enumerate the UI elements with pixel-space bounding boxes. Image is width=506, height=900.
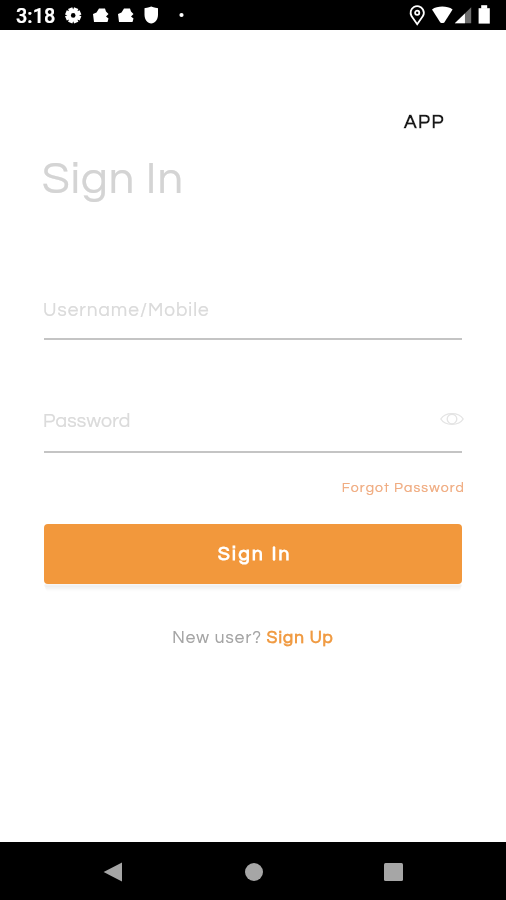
button[interactable]: New user? Sign Up: [44, 629, 462, 647]
staticText: Sign In: [42, 156, 184, 202]
staticText: New user? Sign Up: [44, 629, 462, 647]
staticText: Password: [43, 411, 131, 431]
button[interactable]: APP: [404, 112, 445, 132]
staticText: 3:18: [16, 4, 56, 27]
button[interactable]: Back: [88, 847, 137, 896]
button[interactable]: Home: [229, 847, 278, 896]
button[interactable]: Forgot Password: [44, 481, 465, 495]
staticText: Forgot Password: [44, 481, 465, 495]
staticText: Username/Mobile: [43, 300, 210, 320]
button[interactable]: Password: [44, 405, 424, 453]
button[interactable]: Sign In: [44, 524, 462, 584]
button[interactable]: Username/Mobile: [44, 294, 462, 340]
button[interactable]: Show password: [434, 401, 470, 437]
staticText: APP: [404, 112, 445, 132]
staticText: Sign In: [218, 544, 292, 564]
button[interactable]: Recent apps: [369, 847, 418, 896]
